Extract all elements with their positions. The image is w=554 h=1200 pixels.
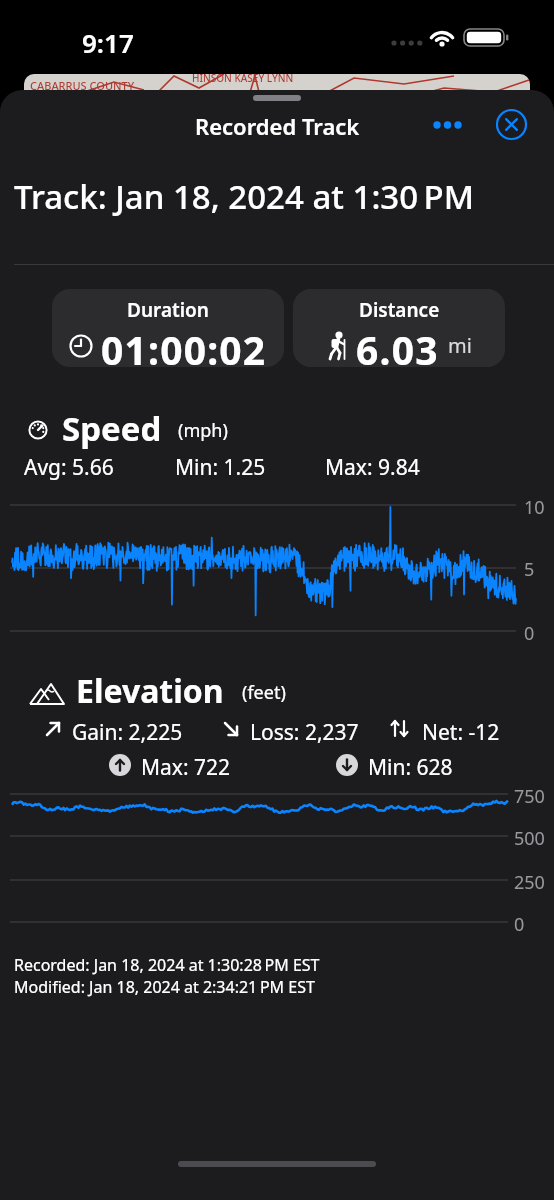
staticText: 6.03 [356, 323, 439, 367]
staticText: Avg: 5.66 [24, 453, 114, 482]
staticText: HINSON KASEY LYNN [192, 74, 294, 85]
staticText: Loss: 2,237 [250, 718, 359, 747]
staticText: 750 [514, 784, 545, 809]
button[interactable]: Duration [52, 289, 284, 367]
staticText: (feet) [242, 680, 286, 705]
button[interactable] [425, 110, 471, 140]
staticText: 0 [524, 621, 535, 646]
staticText: Elevation [76, 669, 224, 713]
staticText: Max: 722 [141, 753, 231, 782]
staticText: 01:00:02 [101, 323, 267, 367]
staticText: Distance [359, 297, 440, 323]
button[interactable] [495, 108, 528, 141]
staticText: 250 [514, 870, 545, 895]
staticText: 0 [514, 912, 525, 937]
staticText: Speed [62, 406, 162, 451]
staticText: Gain: 2,225 [72, 718, 183, 747]
staticText: Recorded: Jan 18, 2024 at 1:30:28 PM EST [14, 954, 320, 976]
staticText: Max: 9.84 [325, 453, 420, 482]
staticText: mi [448, 332, 472, 359]
staticText: 500 [514, 826, 545, 851]
staticText: Duration [127, 297, 209, 323]
staticText: CABARRUS COUNTY [30, 78, 135, 93]
staticText: 10 [524, 495, 545, 520]
staticText: Recorded Track [195, 111, 360, 141]
staticText: 5 [524, 557, 535, 582]
staticText: Min: 1.25 [175, 453, 266, 482]
staticText: Min: 628 [368, 753, 453, 782]
staticText: Net: -12 [422, 718, 500, 747]
staticText: Track: Jan 18, 2024 at 1:30 PM [14, 174, 475, 219]
staticText: Modified: Jan 18, 2024 at 2:34:21 PM EST [14, 976, 315, 998]
button[interactable]: Distance [293, 289, 505, 367]
staticText: 9:17 [82, 25, 134, 60]
staticText: (mph) [178, 418, 228, 443]
